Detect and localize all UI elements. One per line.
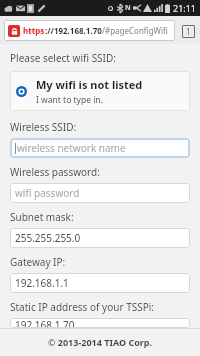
button[interactable]: 255.255.255.0 [10,228,190,248]
staticText: Static IP address of your TSSPi: [10,300,154,314]
staticText: Subnet mask: [10,210,74,224]
staticText: N [125,3,131,13]
button[interactable]: wireless network name [10,138,190,158]
button[interactable]: Tabs [180,23,196,39]
staticText: 1 [186,26,191,37]
staticText: ://192.168.1.70 [45,25,102,36]
button[interactable]: https [4,20,175,41]
staticText: My wifi is not listed [36,77,143,92]
button[interactable]: wifi password [10,183,190,203]
staticText: https [23,25,45,36]
staticText: wifi password [15,186,80,200]
staticText: Please select wifi SSID: [10,51,116,65]
button[interactable]: My wifi is not listed [10,71,190,111]
staticText: 192.168.1.70 [15,318,75,328]
button[interactable]: 192.168.1.70 [10,318,190,328]
staticText: 192.168.1.1 [15,276,69,290]
staticText: 21:11 [173,2,197,14]
staticText: wireless network name [17,141,126,155]
staticText: © 2013-2014 TIAO Corp. [48,336,153,348]
staticText: Wireless SSID: [10,120,77,134]
staticText: Wireless password: [10,165,100,179]
staticText: 255.255.255.0 [15,231,81,245]
staticText: Gateway IP: [10,255,66,269]
staticText: I want to type in. [36,94,103,106]
staticText: /#pageConfigWifi [102,25,168,36]
button[interactable]: 192.168.1.1 [10,273,190,293]
